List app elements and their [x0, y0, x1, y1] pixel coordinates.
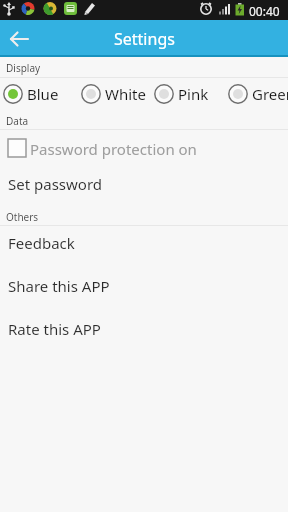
- staticText: Share this APP: [8, 276, 110, 296]
- button[interactable]: Share this APP: [0, 274, 288, 314]
- button[interactable]: Green: [228, 84, 288, 104]
- staticText: Green: [252, 84, 288, 104]
- button[interactable]: Password protection on: [0, 134, 288, 162]
- button[interactable]: Feedback: [0, 231, 288, 271]
- staticText: White: [105, 84, 146, 104]
- button[interactable]: Set password: [0, 172, 288, 212]
- staticText: Rate this APP: [8, 319, 101, 339]
- staticText: Pink: [178, 84, 209, 104]
- staticText: Data: [6, 114, 29, 128]
- button[interactable]: White: [81, 84, 146, 104]
- staticText: 00:40: [249, 3, 280, 19]
- button[interactable]: Pink: [154, 84, 209, 104]
- staticText: Blue: [27, 84, 59, 104]
- button[interactable]: Rate this APP: [0, 317, 288, 357]
- button[interactable]: Blue: [3, 84, 59, 104]
- staticText: Others: [6, 210, 39, 224]
- staticText: Display: [6, 61, 41, 75]
- staticText: Feedback: [8, 233, 75, 253]
- button[interactable]: [0, 20, 44, 57]
- staticText: Password protection on: [30, 139, 197, 159]
- staticText: Settings: [114, 28, 175, 50]
- staticText: Set password: [8, 174, 103, 194]
